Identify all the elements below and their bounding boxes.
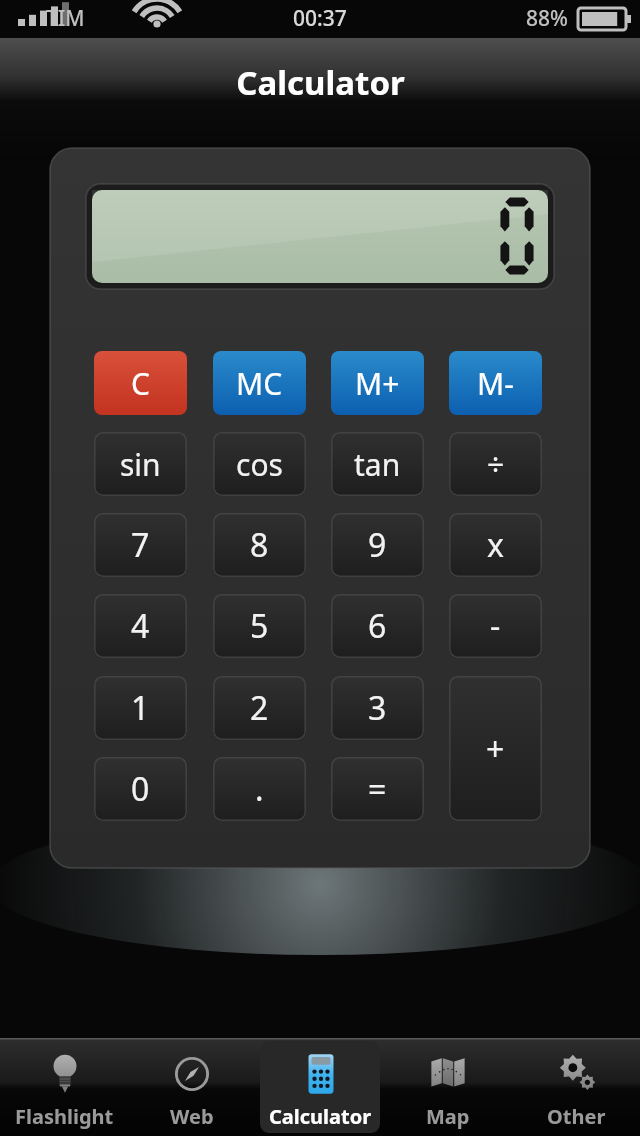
button[interactable]: cos [213, 432, 306, 496]
button[interactable]: 0 [94, 757, 187, 821]
button[interactable]: 4 [94, 594, 187, 658]
button[interactable]: M+ [331, 351, 424, 415]
staticText: Map [426, 1103, 470, 1130]
button[interactable]: + [449, 676, 542, 821]
button[interactable]: Other [516, 1041, 636, 1133]
button[interactable]: 2 [213, 676, 306, 740]
staticText: M+ [355, 363, 400, 404]
button[interactable]: 8 [213, 513, 306, 577]
staticText: . [255, 767, 264, 811]
staticText: - [490, 604, 501, 648]
staticText: M- [477, 363, 514, 404]
button[interactable]: Web [132, 1041, 252, 1133]
button[interactable]: Calculator [260, 1041, 380, 1133]
staticText: x [487, 523, 504, 567]
staticText: 00:37 [293, 4, 347, 33]
button[interactable]: C [94, 351, 187, 415]
staticText: 1 [131, 686, 150, 730]
staticText: 6 [368, 604, 387, 648]
staticText: Calculator [236, 60, 405, 105]
staticText: 3 [368, 686, 387, 730]
staticText: 2 [250, 686, 269, 730]
button[interactable]: tan [331, 432, 424, 496]
staticText: Other [547, 1103, 606, 1130]
button[interactable]: 9 [331, 513, 424, 577]
button[interactable]: 6 [331, 594, 424, 658]
button[interactable]: MC [213, 351, 306, 415]
staticText: = [368, 767, 387, 811]
staticText: 4 [131, 604, 150, 648]
button[interactable]: - [449, 594, 542, 658]
button[interactable]: Map [388, 1041, 508, 1133]
staticText: TIM [46, 4, 85, 33]
staticText: 8 [250, 523, 269, 567]
button[interactable]: M- [449, 351, 542, 415]
button[interactable]: = [331, 757, 424, 821]
staticText: 9 [368, 523, 387, 567]
button[interactable]: sin [94, 432, 187, 496]
staticText: + [486, 727, 505, 771]
staticText: Calculator [269, 1103, 372, 1130]
button[interactable]: 1 [94, 676, 187, 740]
button[interactable]: ÷ [449, 432, 542, 496]
button[interactable]: x [449, 513, 542, 577]
staticText: sin [120, 444, 161, 485]
staticText: 88% [526, 4, 568, 33]
staticText: 0 [131, 767, 150, 811]
button[interactable]: 7 [94, 513, 187, 577]
staticText: cos [236, 444, 283, 485]
button[interactable]: Flashlight [4, 1041, 124, 1133]
staticText: 5 [250, 604, 269, 648]
staticText: 7 [131, 523, 150, 567]
staticText: Flashlight [15, 1103, 114, 1130]
staticText: C [131, 363, 150, 404]
staticText: MC [236, 363, 283, 404]
button[interactable]: 3 [331, 676, 424, 740]
button[interactable]: . [213, 757, 306, 821]
staticText: ÷ [487, 444, 505, 485]
button[interactable]: 5 [213, 594, 306, 658]
staticText: tan [354, 444, 401, 485]
staticText: Web [170, 1103, 214, 1130]
